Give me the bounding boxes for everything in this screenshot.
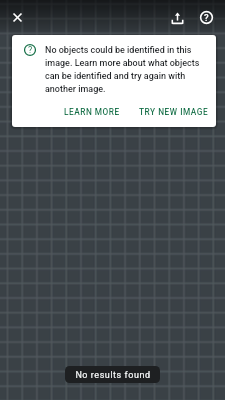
button[interactable]: Share [170,11,185,26]
button[interactable]: Help [200,11,213,24]
button[interactable]: Close [10,10,25,25]
staticText: TRY NEW IMAGE [139,107,209,117]
staticText: LEARN MORE [64,107,120,117]
button[interactable]: LEARN MORE [60,103,124,121]
staticText: ? [28,45,33,56]
button[interactable]: No results found [65,366,160,383]
button[interactable]: TRY NEW IMAGE [135,103,213,121]
staticText: ? [204,12,209,23]
staticText: No objects could be identified in this i… [45,45,203,94]
staticText: No results found [75,370,151,381]
